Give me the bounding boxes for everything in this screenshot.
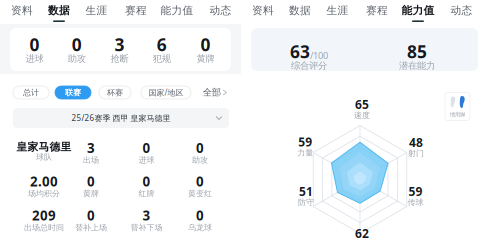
staticText: 59 (408, 183, 422, 199)
staticText: 出场 (83, 155, 99, 165)
staticText: 赛程 (366, 4, 388, 17)
staticText: 传球 (407, 197, 423, 207)
staticText: 25/26赛季 西甲 皇家马德里 (71, 113, 170, 123)
staticText: 潜在能力 (399, 60, 435, 71)
button[interactable]: 数据 (40, 0, 78, 24)
staticText: 3 (142, 206, 150, 224)
staticText: 替补上场 (75, 223, 107, 232)
staticText: 国家/地区 (148, 87, 183, 98)
button[interactable]: 动态 (442, 0, 480, 24)
staticText: 黄牌 (196, 53, 214, 64)
staticText: 犯规 (153, 53, 171, 64)
button[interactable]: 能力值 (399, 0, 437, 24)
button[interactable]: 动态 (201, 0, 239, 24)
staticText: 0 (142, 172, 150, 190)
staticText: 替补下场 (130, 223, 162, 232)
staticText: 2.00 (30, 172, 58, 190)
staticText: 6 (157, 33, 167, 56)
staticText: 力量 (297, 148, 313, 158)
staticText: 生涯 (85, 4, 107, 17)
button[interactable]: 国家/地区 (141, 86, 191, 99)
staticText: 0 (200, 33, 210, 56)
button[interactable]: 生涯 (77, 0, 115, 24)
staticText: 209 (32, 206, 56, 224)
staticText: 惯用脚 (450, 111, 465, 118)
staticText: 0 (87, 172, 95, 190)
staticText: 全部 (203, 87, 221, 98)
staticText: 0 (29, 33, 39, 56)
staticText: 抢断 (110, 53, 128, 64)
button[interactable]: 数据 (281, 0, 319, 24)
staticText: 0 (196, 139, 204, 157)
button[interactable]: 赛程 (117, 0, 155, 24)
button[interactable]: 赛程 (358, 0, 396, 24)
staticText: 3 (87, 139, 95, 157)
button[interactable]: 资料 (244, 0, 282, 24)
button[interactable]: 25/26赛季 西甲 皇家马德里 (13, 108, 229, 128)
staticText: 助攻 (192, 155, 208, 165)
staticText: 能力值 (160, 4, 193, 17)
button[interactable]: 全部 (199, 86, 230, 99)
staticText: 场均积分 (28, 189, 60, 198)
staticText: 生涯 (326, 4, 348, 17)
staticText: 防守 (298, 197, 314, 207)
staticText: 射门 (408, 148, 424, 158)
staticText: 0 (196, 206, 204, 224)
staticText: 速度 (354, 110, 370, 120)
staticText: 资料 (252, 4, 274, 17)
staticText: 59 (298, 134, 312, 150)
staticText: 0 (142, 139, 150, 157)
staticText: 皇家马德里 (16, 140, 71, 154)
staticText: 65 (355, 96, 369, 112)
staticText: 62 (355, 225, 369, 241)
staticText: 资料 (11, 4, 33, 17)
staticText: 数据 (48, 4, 70, 17)
staticText: 动态 (209, 4, 231, 17)
staticText: 黄牌 (83, 189, 99, 198)
button[interactable]: 总计 (13, 86, 49, 99)
staticText: 杯赛 (107, 88, 123, 97)
staticText: 赛程 (125, 4, 147, 17)
staticText: 红牌 (138, 189, 154, 198)
staticText: 乌龙球 (188, 223, 212, 232)
staticText: 85 (407, 40, 427, 63)
staticText: 综合评分 (291, 60, 327, 71)
staticText: 黄变红 (188, 189, 212, 198)
staticText: 51 (299, 183, 313, 199)
button[interactable]: 生涯 (318, 0, 356, 24)
staticText: 0 (87, 206, 95, 224)
staticText: 48 (409, 134, 423, 150)
staticText: 总计 (23, 88, 39, 97)
staticText: 数据 (289, 4, 311, 17)
staticText: 联赛 (65, 88, 81, 97)
staticText: 进球 (138, 155, 154, 165)
staticText: 0 (72, 33, 82, 56)
staticText: 3 (114, 33, 124, 56)
button[interactable]: 联赛 (55, 86, 91, 99)
staticText: 动态 (450, 4, 472, 17)
staticText: 进球 (25, 53, 43, 64)
button[interactable]: 惯用脚 (445, 92, 470, 120)
button[interactable]: 资料 (3, 0, 41, 24)
staticText: 0 (196, 172, 204, 190)
button[interactable]: 能力值 (158, 0, 196, 24)
staticText: 出场总时间 (24, 223, 64, 232)
staticText: 能力值 (401, 4, 434, 17)
staticText: /100 (310, 49, 328, 61)
button[interactable]: 杯赛 (99, 86, 131, 99)
staticText: 助攻 (68, 53, 86, 64)
staticText: 球队 (36, 152, 52, 162)
staticText: 63 (290, 40, 310, 63)
